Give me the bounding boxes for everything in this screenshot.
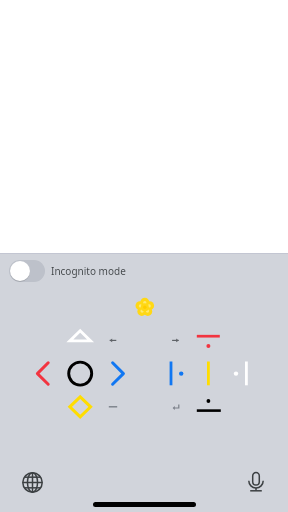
button[interactable]: Incognito mode	[0, 253, 288, 289]
button[interactable]: Down	[62, 392, 99, 428]
staticText: Incognito mode	[51, 264, 126, 278]
button[interactable]: Left	[25, 356, 62, 392]
button[interactable]: Delete	[191, 318, 228, 354]
button[interactable]: Backspace	[99, 318, 136, 354]
button[interactable]: Change keyboard language	[17, 467, 47, 497]
button[interactable]: Cursor left	[154, 356, 191, 392]
button[interactable]: Cursor right	[228, 356, 265, 392]
button[interactable]: Select	[62, 356, 99, 392]
button[interactable]: Tab	[154, 318, 191, 354]
button[interactable]: Up	[62, 318, 99, 354]
button[interactable]: Voice input	[241, 467, 271, 497]
button[interactable]: Return	[154, 392, 191, 428]
button[interactable]: Underline	[191, 392, 228, 428]
button[interactable]: Space	[99, 392, 136, 428]
button[interactable]: Cursor	[191, 356, 228, 392]
button[interactable]: Right	[99, 356, 136, 392]
